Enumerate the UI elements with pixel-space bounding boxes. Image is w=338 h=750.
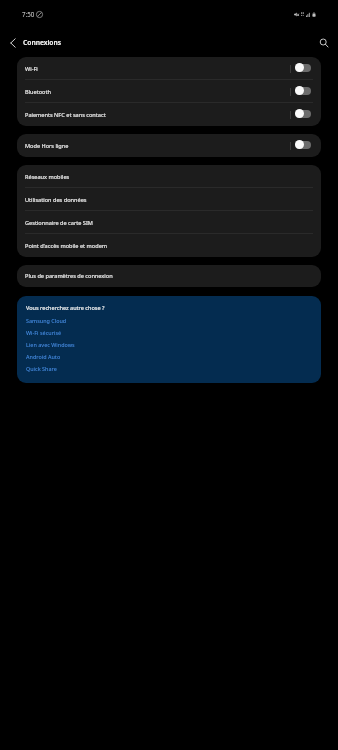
staticText: Utilisation des données (25, 196, 87, 204)
button[interactable]: Lien avec Windows (26, 341, 321, 348)
button[interactable]: Réseaux mobiles (17, 165, 321, 188)
staticText: Connexions (23, 38, 62, 47)
staticText: Plus de paramètres de connexion (25, 272, 113, 280)
button[interactable]: Bluetooth (17, 80, 321, 103)
staticText: Paiements NFC et sans contact (25, 111, 290, 119)
staticText: Wi-Fi (25, 65, 290, 73)
staticText: Vous recherchez autre chose ? (26, 304, 105, 312)
staticText: Quick Share (26, 365, 57, 372)
button[interactable]: Back (3, 33, 23, 53)
staticText: Lien avec Windows (26, 341, 75, 348)
button[interactable]: Wi-Fi (17, 57, 321, 80)
staticText: Bluetooth (25, 88, 290, 96)
button[interactable]: Paiements NFC et sans contact (17, 103, 321, 126)
button[interactable]: Utilisation des données (17, 188, 321, 211)
staticText: Wi-Fi sécurisé (26, 329, 62, 336)
staticText: Android Auto (26, 353, 61, 360)
staticText: Gestionnaire de carte SIM (25, 219, 93, 227)
button[interactable]: Point d'accès mobile et modem (17, 234, 321, 257)
button[interactable]: Gestionnaire de carte SIM (17, 211, 321, 234)
button[interactable]: Plus de paramètres de connexion (17, 265, 321, 287)
button[interactable]: Wi-Fi sécurisé (26, 329, 321, 336)
button[interactable]: Samsung Cloud (26, 317, 321, 324)
staticText: Samsung Cloud (26, 317, 67, 324)
staticText: Point d'accès mobile et modem (25, 242, 108, 250)
button[interactable]: Android Auto (26, 353, 321, 360)
staticText: 7:50 (22, 10, 35, 18)
button[interactable]: Quick Share (26, 365, 321, 372)
button[interactable]: Mode Hors ligne (17, 134, 321, 157)
staticText: Mode Hors ligne (25, 142, 290, 150)
staticText: Réseaux mobiles (25, 173, 70, 181)
button[interactable]: Search (314, 33, 334, 53)
